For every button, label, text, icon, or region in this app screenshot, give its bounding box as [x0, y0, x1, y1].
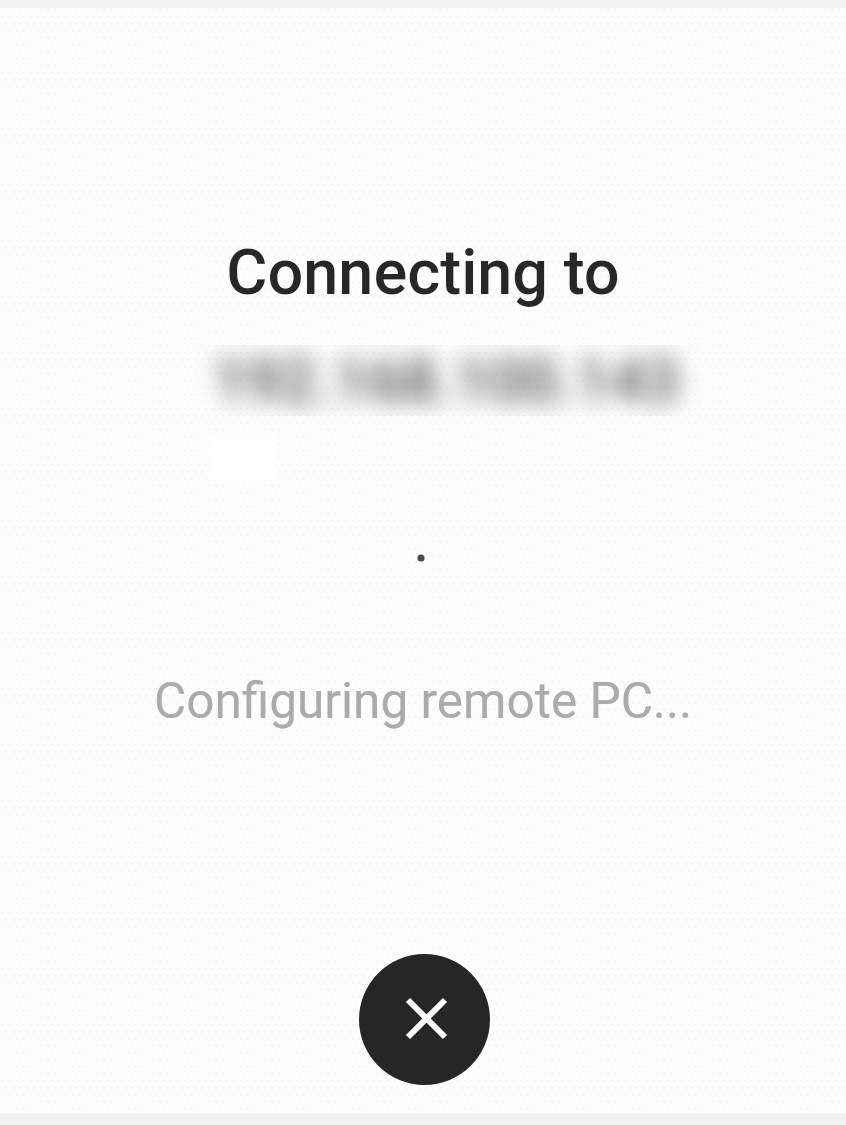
staticText: Configuring remote PC...	[0, 672, 846, 730]
button[interactable]: Cancel connection	[359, 954, 490, 1085]
staticText: 192.168.100.143	[23, 345, 846, 416]
staticText: Connecting to	[0, 236, 846, 310]
